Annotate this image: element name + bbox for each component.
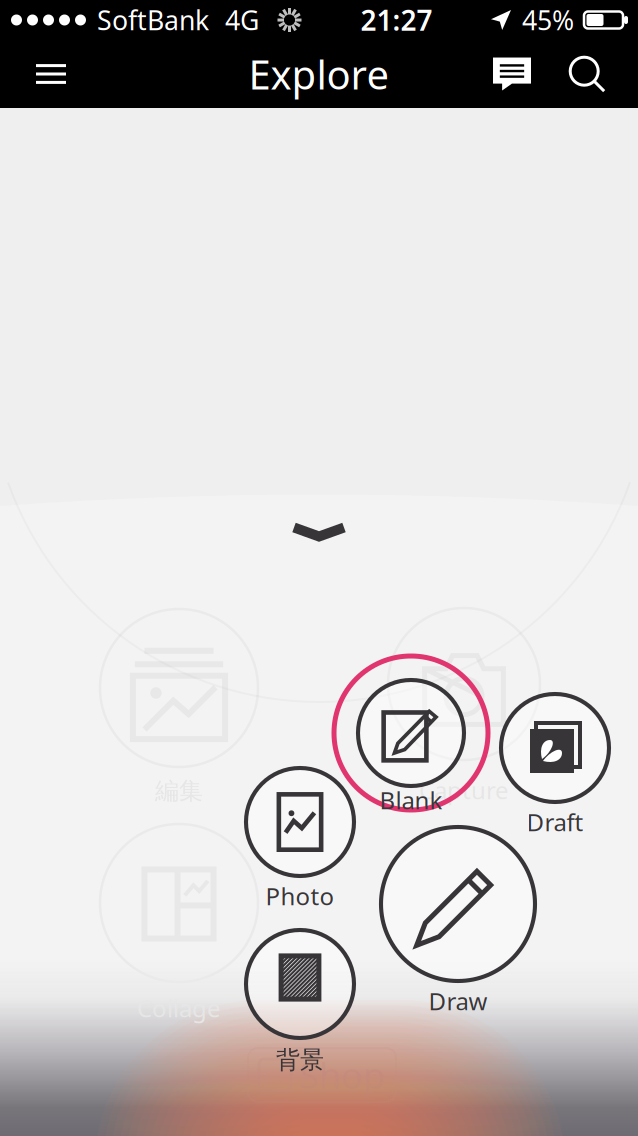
button[interactable]: Menu xyxy=(0,40,102,108)
staticText: 編集 xyxy=(155,776,203,806)
button[interactable]: Collapse xyxy=(264,504,374,560)
button[interactable]: Search xyxy=(557,40,617,108)
button[interactable]: Photo xyxy=(176,698,424,946)
button[interactable]: 背景 xyxy=(176,860,424,1108)
staticText: SoftBank xyxy=(97,2,209,38)
staticText: Shop xyxy=(299,1051,385,1099)
staticText: Capture xyxy=(419,774,509,806)
staticText: Blank xyxy=(379,784,442,816)
staticText: 背景 xyxy=(276,1045,324,1075)
staticText: 45% xyxy=(522,2,574,38)
button[interactable]: Draw xyxy=(311,757,605,1051)
staticText: Collage xyxy=(137,992,221,1024)
staticText: Photo xyxy=(265,880,334,912)
button[interactable]: Draft xyxy=(431,624,638,872)
staticText: Draw xyxy=(428,985,487,1017)
staticText: 4G xyxy=(225,2,259,38)
staticText: Draft xyxy=(526,806,583,838)
staticText: Explore xyxy=(248,47,389,100)
button[interactable]: Messages xyxy=(467,40,557,108)
button[interactable]: Blank xyxy=(288,610,534,856)
staticText: 21:27 xyxy=(360,1,432,39)
